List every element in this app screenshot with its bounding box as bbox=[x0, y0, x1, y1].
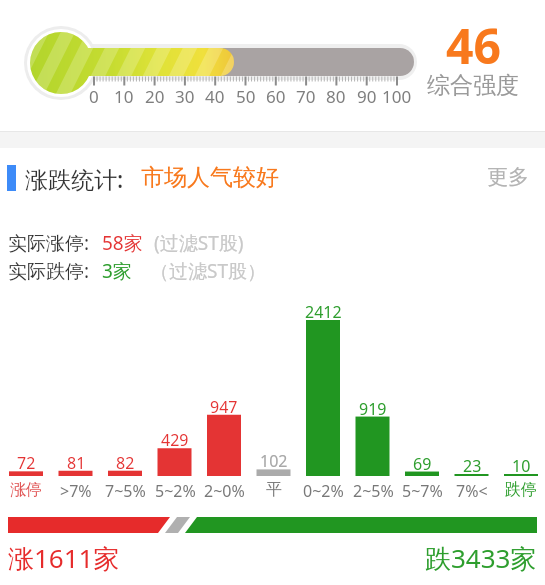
staticText: 综合强度 bbox=[427, 71, 519, 100]
staticText: 100 bbox=[382, 85, 412, 108]
staticText: 919 bbox=[359, 398, 387, 420]
staticText: 平 bbox=[266, 480, 282, 500]
staticText: 50 bbox=[236, 85, 256, 108]
staticText: 涨停 bbox=[10, 480, 42, 500]
staticText: >7% bbox=[60, 480, 92, 502]
staticText: 2412 bbox=[305, 301, 342, 323]
button[interactable]: 涨跌统计: bbox=[25, 163, 124, 194]
staticText: 90 bbox=[357, 85, 377, 108]
staticText: （过滤ST股） bbox=[150, 258, 266, 284]
staticText: 10 bbox=[512, 455, 531, 477]
staticText: 70 bbox=[296, 85, 316, 108]
staticText: 跌停 bbox=[505, 480, 537, 500]
staticText: 10 bbox=[114, 85, 134, 108]
staticText: 3家 bbox=[102, 258, 132, 284]
staticText: 跌3433家 bbox=[425, 540, 537, 576]
staticText: 7~5% bbox=[105, 480, 146, 502]
staticText: 5~2% bbox=[155, 480, 196, 502]
staticText: 72 bbox=[17, 452, 36, 474]
staticText: 82 bbox=[116, 452, 135, 474]
staticText: 市场人气较好 bbox=[141, 163, 279, 192]
staticText: 69 bbox=[413, 453, 432, 475]
staticText: 947 bbox=[210, 396, 238, 418]
staticText: 7%< bbox=[456, 480, 488, 502]
staticText: 60 bbox=[266, 85, 286, 108]
staticText: 涨跌统计: bbox=[25, 163, 124, 194]
staticText: 81 bbox=[67, 452, 86, 474]
staticText: 5~7% bbox=[402, 480, 443, 502]
staticText: 58家 bbox=[102, 230, 143, 256]
staticText: 2~0% bbox=[204, 480, 245, 502]
staticText: 更多 bbox=[487, 164, 529, 190]
staticText: 429 bbox=[161, 429, 189, 451]
staticText: 2~5% bbox=[353, 480, 394, 502]
staticText: 实际涨停: bbox=[8, 230, 90, 256]
staticText: 102 bbox=[260, 450, 288, 472]
staticText: 46 bbox=[446, 13, 501, 78]
staticText: 20 bbox=[145, 85, 165, 108]
staticText: 实际跌停: bbox=[8, 258, 90, 284]
staticText: 40 bbox=[205, 85, 225, 108]
staticText: 涨1611家 bbox=[8, 540, 120, 576]
staticText: 23 bbox=[463, 455, 482, 477]
staticText: 80 bbox=[326, 85, 346, 108]
staticText: (过滤ST股) bbox=[154, 230, 244, 256]
staticText: 30 bbox=[175, 85, 195, 108]
staticText: 0 bbox=[89, 85, 99, 108]
button[interactable]: 更多 bbox=[487, 164, 529, 190]
staticText: 0~2% bbox=[303, 480, 344, 502]
